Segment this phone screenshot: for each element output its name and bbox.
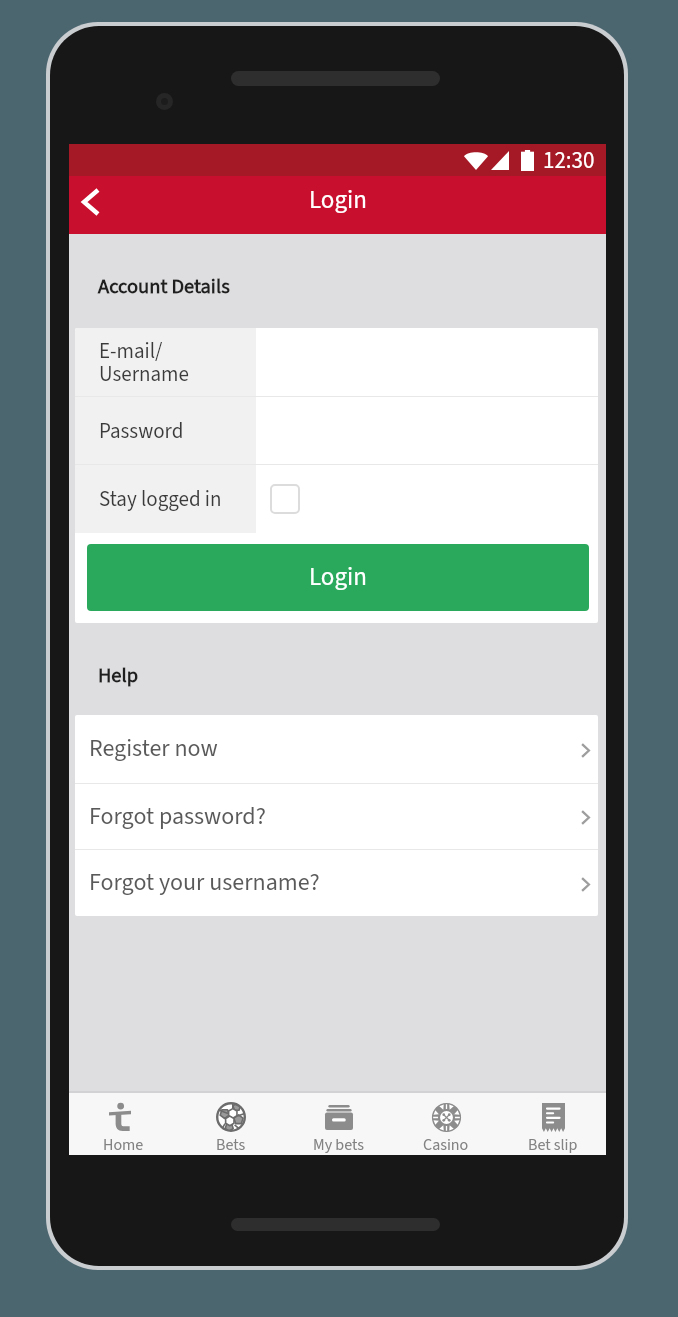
button[interactable]: Casino <box>392 1093 499 1155</box>
staticText: Bets <box>216 1134 246 1155</box>
staticText: Account Details <box>98 272 230 301</box>
button[interactable]: Home <box>69 1093 177 1155</box>
staticText: My bets <box>313 1134 364 1155</box>
button[interactable]: Forgot your username? <box>75 850 598 916</box>
button[interactable]: Bet slip <box>499 1093 606 1155</box>
button[interactable]: Register now <box>75 715 598 783</box>
button[interactable]: Stay logged in <box>271 485 299 513</box>
button[interactable]: Login <box>87 544 589 611</box>
button[interactable]: Back <box>69 176 127 234</box>
staticText: Login <box>309 182 367 218</box>
staticText: Home <box>103 1134 144 1155</box>
button[interactable]: Forgot password? <box>75 784 598 849</box>
staticText: Bet slip <box>528 1134 578 1155</box>
staticText: Login <box>309 559 367 595</box>
staticText: Password <box>99 416 184 446</box>
staticText: 12:30 <box>543 144 595 176</box>
staticText: Stay logged in <box>99 484 222 514</box>
staticText: Help <box>98 661 139 690</box>
button[interactable]: My bets <box>285 1093 392 1155</box>
button[interactable]: Bets <box>177 1093 285 1155</box>
staticText: Casino <box>423 1134 469 1155</box>
staticText: Forgot password? <box>89 799 266 833</box>
staticText: Register now <box>89 731 218 765</box>
staticText: E-mail/ Username <box>99 336 189 389</box>
staticText: Forgot your username? <box>89 865 320 899</box>
